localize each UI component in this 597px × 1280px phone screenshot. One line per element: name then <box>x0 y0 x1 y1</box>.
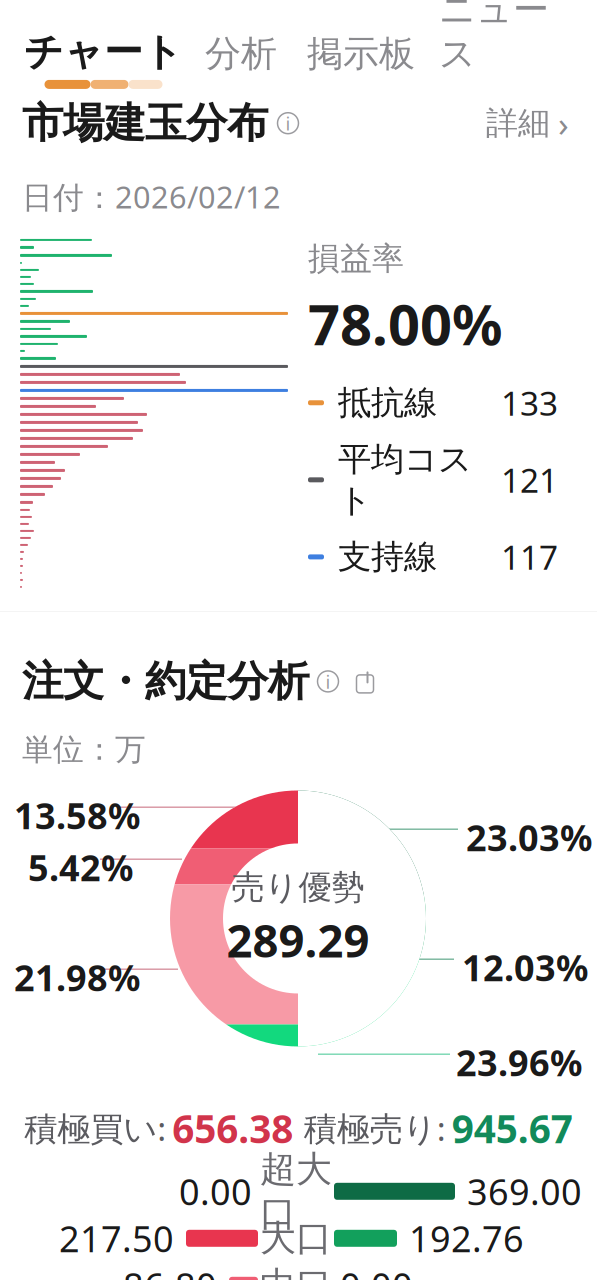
staticText: 12.03% <box>462 943 588 991</box>
staticText: 支持線 <box>338 536 437 577</box>
button[interactable]: Share <box>347 664 383 698</box>
button[interactable]: Information <box>309 664 347 698</box>
staticText: 中口 <box>260 1263 332 1280</box>
staticText: 0.00 <box>179 1167 252 1215</box>
staticText: 積極売り: <box>304 1106 446 1150</box>
button[interactable]: 掲示板 <box>295 32 427 89</box>
staticText: 945.67 <box>452 1102 573 1154</box>
staticText: 192.76 <box>409 1214 524 1262</box>
staticText: 23.96% <box>456 1038 582 1086</box>
staticText: 217.50 <box>59 1214 174 1262</box>
staticText: 21.98% <box>14 953 140 1001</box>
staticText: 133 <box>501 381 558 425</box>
staticText: 大口 <box>260 1216 332 1260</box>
staticText: チャート <box>24 28 183 76</box>
button[interactable]: 分析 <box>187 32 295 89</box>
staticText: 日付：2026/02/12 <box>22 176 281 217</box>
staticText: 369.00 <box>467 1167 582 1215</box>
staticText: 平均コスト <box>338 439 472 521</box>
staticText: 掲示板 <box>307 32 415 76</box>
staticText: 単位：万 <box>22 731 146 768</box>
staticText: 117 <box>501 535 558 579</box>
staticText: 23.03% <box>466 813 592 861</box>
staticText: 超大口 <box>260 1147 332 1235</box>
staticText: ニュース <box>439 0 549 76</box>
staticText: 市場建玉分布 <box>22 98 268 149</box>
staticText: 0.00 <box>340 1261 413 1280</box>
staticText: 289.29 <box>226 910 369 970</box>
staticText: 売り優勢 <box>231 867 364 908</box>
staticText: 86.80 <box>123 1261 217 1280</box>
staticText: 13.58% <box>14 791 140 839</box>
staticText: 121 <box>501 458 558 502</box>
staticText: 詳細 <box>486 104 550 143</box>
staticText: 656.38 <box>172 1102 293 1154</box>
staticText: 78.00% <box>308 286 503 361</box>
button[interactable]: ニュース <box>427 0 561 89</box>
staticText: › <box>558 100 569 146</box>
staticText: 5.42% <box>28 843 133 891</box>
staticText: 抵抗線 <box>338 382 437 423</box>
staticText: i <box>325 669 330 694</box>
staticText: 損益率 <box>308 239 404 278</box>
button[interactable]: Information <box>268 106 308 140</box>
staticText: 積極買い: <box>24 1106 166 1150</box>
button[interactable]: 詳細 <box>480 92 575 154</box>
button[interactable]: チャート <box>20 28 187 89</box>
staticText: 注文・約定分析 <box>22 656 309 707</box>
staticText: 分析 <box>205 32 277 76</box>
staticText: i <box>285 111 290 136</box>
